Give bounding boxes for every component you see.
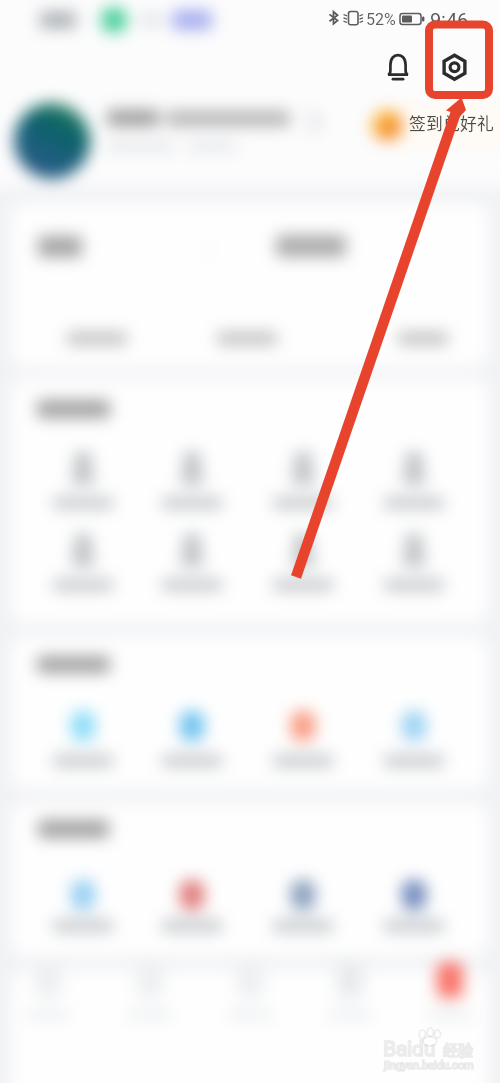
button[interactable] [250,204,488,366]
button[interactable]: Settings [437,48,474,85]
button[interactable] [8,98,338,184]
button[interactable]: Notifications [381,48,418,85]
button[interactable] [12,204,250,366]
button[interactable] [366,102,500,150]
